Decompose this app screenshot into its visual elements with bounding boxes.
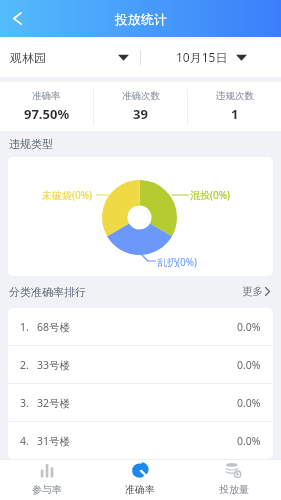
staticText: 33号楼 [37,358,71,372]
staticText: 2. [20,358,29,372]
staticText: 3. [20,396,29,410]
staticText: 0.0% [237,396,261,410]
staticText: 分类准确率排行 [9,285,86,299]
staticText: 投放量 [219,483,249,496]
button[interactable]: 观林园 [0,37,140,77]
staticText: 更多 [242,285,263,298]
staticText: 1 [231,105,239,123]
staticText: 违规次数 [216,90,254,102]
staticText: 投放统计 [115,11,167,27]
staticText: 10月15日 [176,49,228,65]
staticText: 观林园 [10,50,46,65]
staticText: 未破袋(0%) [42,188,93,202]
staticText: 0.0% [237,358,261,372]
button[interactable]: 10月15日 [141,37,281,77]
staticText: 97.50% [24,105,70,123]
button[interactable]: 违规次数 [188,82,281,131]
staticText: 准确率 [32,90,61,102]
button[interactable]: 4. [8,422,273,459]
staticText: 乱扔(0%) [157,255,198,269]
button[interactable]: 准确率 [0,82,93,131]
button[interactable]: 投放量 [187,460,281,500]
button[interactable]: 准确率 [93,460,187,500]
staticText: 准确率 [125,483,155,496]
staticText: 参与率 [32,483,62,496]
staticText: 违规类型 [9,137,53,151]
staticText: 0.0% [237,320,261,334]
staticText: 混投(0%) [190,188,231,202]
staticText: 4. [20,434,29,448]
button[interactable]: 准确次数 [94,82,187,131]
staticText: 39 [133,105,148,123]
button[interactable]: 3. [8,384,273,421]
button[interactable]: 1. [8,308,273,345]
staticText: 0.0% [237,434,261,448]
button[interactable]: Back [0,0,34,37]
staticText: 32号楼 [37,396,71,410]
button[interactable]: 参与率 [0,460,93,500]
button[interactable]: 2. [8,346,273,383]
staticText: 准确次数 [122,90,160,102]
staticText: 1. [20,320,29,334]
staticText: 68号楼 [37,320,71,334]
staticText: 31号楼 [37,434,71,448]
button[interactable]: 更多 [242,285,272,298]
